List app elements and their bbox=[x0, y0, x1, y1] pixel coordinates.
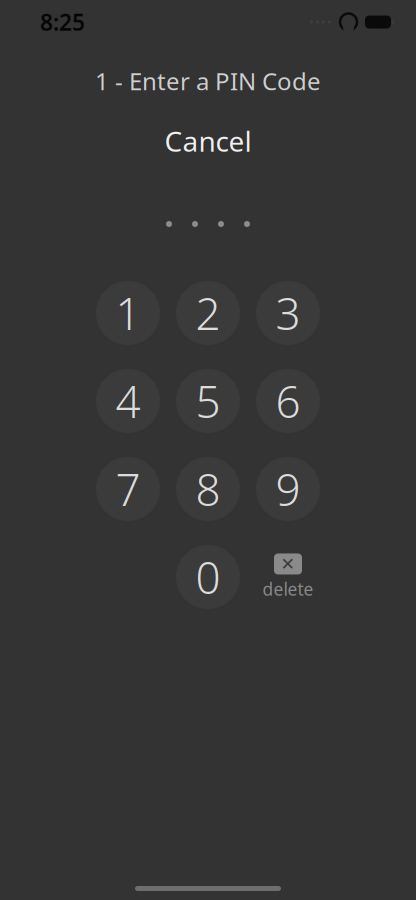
staticText: 8:25 bbox=[40, 7, 85, 37]
staticText: 1 bbox=[115, 284, 140, 342]
button[interactable]: 7 bbox=[96, 457, 160, 521]
staticText: 4 bbox=[115, 372, 140, 430]
button[interactable]: 1 bbox=[96, 281, 160, 345]
staticText: 6 bbox=[275, 372, 300, 430]
staticText: 8 bbox=[195, 460, 220, 518]
button[interactable]: 3 bbox=[256, 281, 320, 345]
staticText: 2 bbox=[195, 284, 220, 342]
staticText: 1 - Enter a PIN Code bbox=[95, 65, 321, 97]
staticText: 9 bbox=[275, 460, 300, 518]
button[interactable]: 9 bbox=[256, 457, 320, 521]
button[interactable]: 2 bbox=[176, 281, 240, 345]
button[interactable]: 8 bbox=[176, 457, 240, 521]
staticText: Cancel bbox=[164, 122, 251, 160]
button[interactable]: 4 bbox=[96, 369, 160, 433]
staticText: 7 bbox=[115, 460, 140, 518]
button[interactable]: 6 bbox=[256, 369, 320, 433]
button[interactable]: Cancel bbox=[108, 124, 308, 158]
staticText: ✕ bbox=[280, 554, 295, 574]
staticText: delete bbox=[262, 577, 313, 600]
staticText: 5 bbox=[195, 372, 220, 430]
staticText: 0 bbox=[195, 548, 220, 606]
button[interactable]: 0 bbox=[176, 545, 240, 609]
staticText: 3 bbox=[275, 284, 300, 342]
button[interactable]: 5 bbox=[176, 369, 240, 433]
button[interactable]: Delete bbox=[256, 545, 320, 609]
